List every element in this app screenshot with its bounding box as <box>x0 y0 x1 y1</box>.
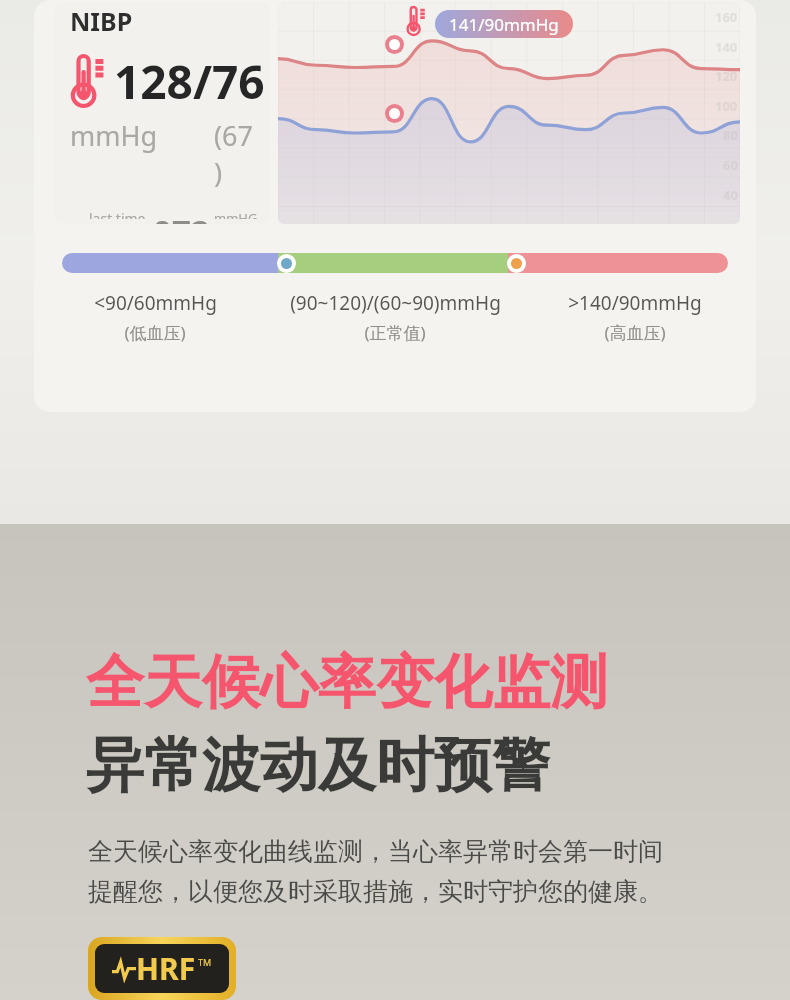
staticText: 100 <box>715 97 738 115</box>
staticText: NIBP <box>70 4 133 38</box>
staticText: 128/76 <box>114 50 265 113</box>
staticText: HRF <box>136 948 196 989</box>
staticText: (低血压) <box>124 321 186 344</box>
staticText: (67) <box>214 117 256 191</box>
staticText: 120 <box>715 67 738 85</box>
staticText: last time <box>89 209 146 219</box>
staticText: 全天候心率变化曲线监测，当心率异常时会第一时间 提醒您，以便您及时采取措施，实时… <box>88 836 663 907</box>
staticText: mmHG <box>214 209 258 219</box>
staticText: (正常值) <box>364 321 426 344</box>
button[interactable]: HRF certification badge <box>95 944 229 993</box>
staticText: >140/90mmHg <box>568 290 702 316</box>
staticText: 141/90mmHg <box>449 13 559 36</box>
staticText: (90~120)/(60~90)mmHg <box>290 290 501 316</box>
staticText: mmHg <box>70 117 158 154</box>
staticText: (高血压) <box>604 321 666 344</box>
staticText: 140 <box>715 38 738 56</box>
staticText: <90/60mmHg <box>94 290 217 316</box>
staticText: 160 <box>715 8 738 26</box>
staticText: 40 <box>723 186 738 204</box>
staticText: TM <box>198 956 212 968</box>
staticText: 全天候心率变化监测 <box>86 646 608 719</box>
staticText: 072 <box>153 209 210 224</box>
button[interactable]: NIBP <box>34 0 756 412</box>
staticText: 80 <box>723 126 738 144</box>
staticText: 异常波动及时预警 <box>86 729 550 802</box>
staticText: 60 <box>723 156 738 174</box>
